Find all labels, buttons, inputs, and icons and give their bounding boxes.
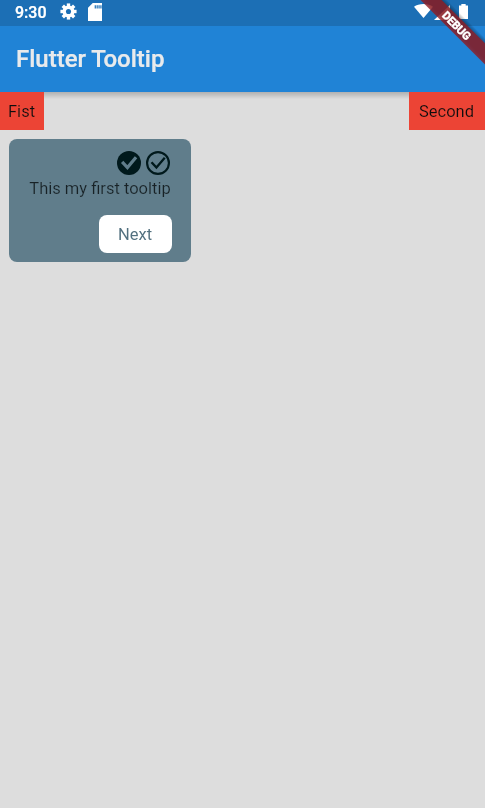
staticText: Fist [8,102,36,121]
staticText: Flutter Tooltip [16,45,165,73]
staticText: 9:30 [15,3,47,22]
staticText: DEBUG [439,9,474,44]
staticText: This my first tooltip [9,179,191,198]
button[interactable]: Fist [0,92,44,130]
button[interactable]: Second [409,92,485,130]
button[interactable]: Next step [146,151,170,175]
staticText: Second [419,102,475,121]
button[interactable]: Next [99,215,172,253]
button[interactable]: Completed step [117,151,141,175]
staticText: Next [118,225,153,244]
